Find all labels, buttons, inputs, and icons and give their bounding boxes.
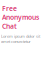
staticText: Lorem ipsum dolor sit amet consectetur — [1, 34, 40, 44]
staticText: Free Anonymous Chat — [2, 4, 39, 31]
